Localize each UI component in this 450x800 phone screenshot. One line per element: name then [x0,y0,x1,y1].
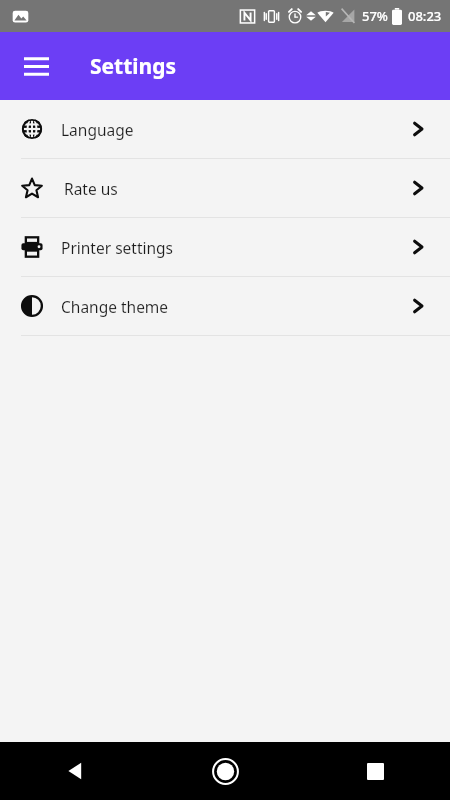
staticText: Change theme [61,296,169,317]
button[interactable]: Home [150,742,300,800]
button[interactable]: Printer settings [0,218,450,276]
staticText: Settings [90,52,177,81]
staticText: Rate us [64,178,118,199]
button[interactable]: Open navigation menu [12,42,60,90]
button[interactable]: Change theme [0,277,450,335]
staticText: 57% [362,7,388,25]
staticText: Printer settings [61,237,174,258]
button[interactable]: Language [0,100,450,158]
staticText: Language [61,119,134,140]
staticText: 08:23 [408,7,442,25]
button[interactable]: Recent apps [300,742,450,800]
button[interactable]: Back [0,742,150,800]
button[interactable]: Rate us [0,159,450,217]
